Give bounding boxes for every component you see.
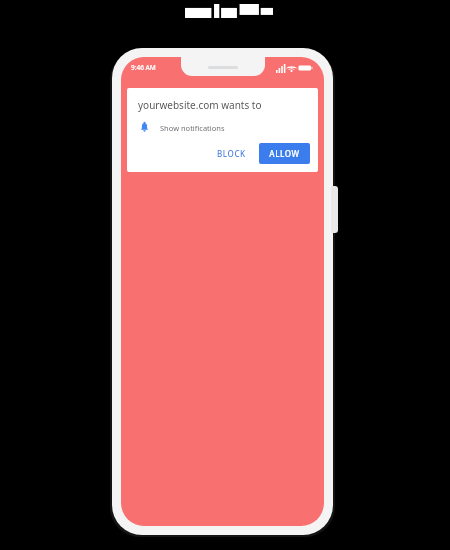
staticText: ALLOW (269, 148, 300, 159)
button[interactable]: Show notifications (127, 121, 318, 134)
button[interactable]: BLOCK (209, 143, 254, 164)
other: Power button (331, 186, 338, 233)
button[interactable]: ALLOW (259, 143, 310, 164)
staticText: 9:46 AM (131, 63, 156, 72)
staticText: BLOCK (217, 148, 246, 159)
staticText: yourwebsite.com wants to (138, 98, 262, 112)
staticText: Show notifications (160, 123, 225, 133)
